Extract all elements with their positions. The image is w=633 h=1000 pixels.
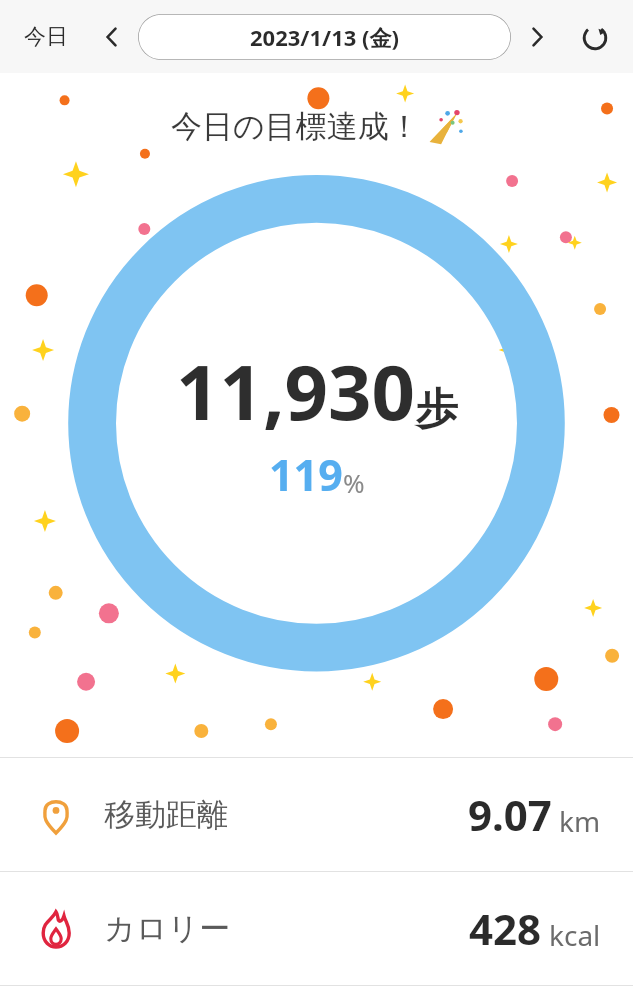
staticText: 9.07 xyxy=(468,786,552,843)
staticText: 2023/1/13 (金) xyxy=(250,22,399,52)
staticText: 歩 xyxy=(416,383,458,436)
staticText: kcal xyxy=(549,916,601,954)
staticText: 今日 xyxy=(24,23,68,51)
button[interactable]: 移動距離 xyxy=(0,758,633,871)
staticText: 11,930 xyxy=(176,339,416,443)
staticText: % xyxy=(343,465,365,500)
button[interactable]: 2023/1/13 (金) xyxy=(138,14,511,60)
button[interactable]: 今日 xyxy=(14,17,78,57)
staticText: 今日の目標達成！ xyxy=(171,107,420,146)
staticText: カロリー xyxy=(104,909,231,948)
button[interactable]: Next day xyxy=(517,17,557,57)
button[interactable]: Previous day xyxy=(92,17,132,57)
staticText: km xyxy=(559,802,601,840)
staticText: 移動距離 xyxy=(104,795,228,834)
staticText: 119 xyxy=(269,445,343,504)
button[interactable]: カロリー xyxy=(0,872,633,985)
staticText: 428 xyxy=(469,900,542,957)
button[interactable]: Refresh xyxy=(571,13,619,61)
